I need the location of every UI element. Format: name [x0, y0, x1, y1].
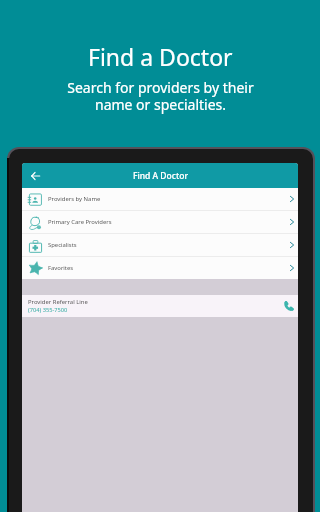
button[interactable]: Specialists — [22, 234, 298, 256]
button[interactable]: Call — [282, 299, 296, 313]
staticText: (704) 355-7500 — [28, 306, 68, 314]
staticText: Primary Care Providers — [48, 218, 112, 226]
button[interactable]: Favorites — [22, 257, 298, 279]
button[interactable]: Providers by Name — [22, 188, 298, 210]
staticText: Search for providers by their name or sp… — [67, 78, 254, 114]
staticText: Specialists — [48, 241, 77, 249]
staticText: Find a Doctor — [88, 41, 233, 72]
staticText: Favorites — [48, 264, 74, 272]
staticText: Find A Doctor — [133, 170, 188, 182]
staticText: Provider Referral Line — [28, 298, 88, 306]
button[interactable]: Primary Care Providers — [22, 211, 298, 233]
button[interactable]: Provider Referral Line — [22, 295, 298, 317]
button[interactable]: Back — [24, 163, 46, 188]
staticText: Providers by Name — [48, 195, 101, 203]
